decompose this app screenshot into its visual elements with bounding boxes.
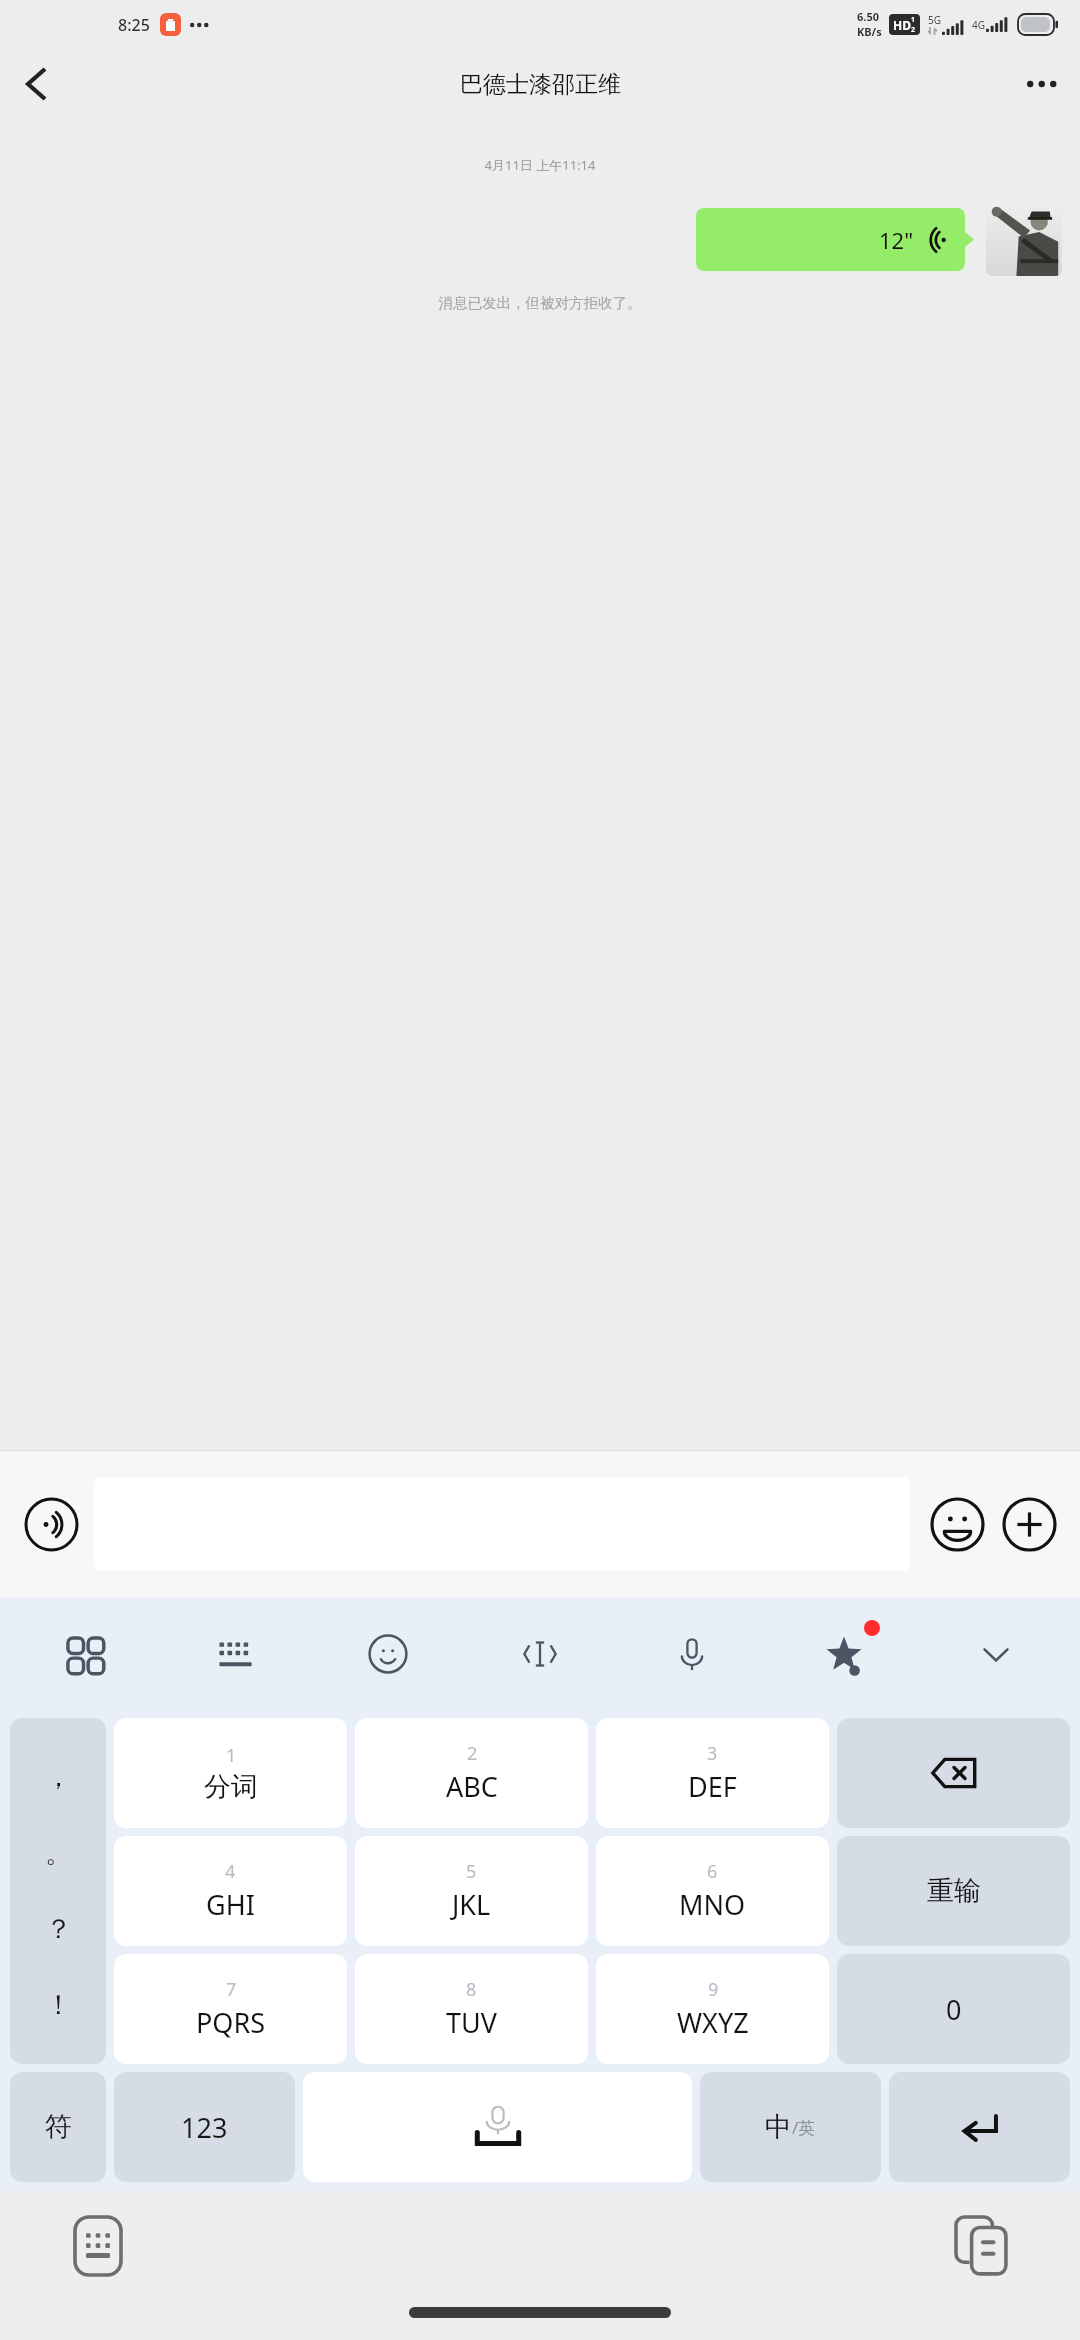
- staticText: MNO: [679, 1886, 746, 1923]
- button[interactable]: 7: [114, 1954, 347, 2064]
- staticText: ABC: [446, 1768, 498, 1805]
- button[interactable]: ，: [10, 1718, 106, 2064]
- button[interactable]: More functions: [998, 1493, 1060, 1555]
- staticText: 4月11日 上午11:14: [0, 156, 1080, 174]
- button[interactable]: Voice input: [660, 1622, 724, 1686]
- staticText: 3: [707, 1741, 718, 1766]
- staticText: 0: [946, 1991, 962, 2028]
- button[interactable]: Hide keyboard: [964, 1622, 1028, 1686]
- staticText: 2: [911, 25, 916, 35]
- staticText: 123: [181, 2109, 228, 2146]
- button[interactable]: 重输: [837, 1836, 1070, 1946]
- staticText: 7: [226, 1977, 237, 2002]
- button[interactable]: 6: [596, 1836, 829, 1946]
- button[interactable]: 1: [114, 1718, 347, 1828]
- button[interactable]: Emoji: [356, 1622, 420, 1686]
- staticText: 2: [467, 1741, 478, 1766]
- staticText: 符: [45, 2110, 72, 2144]
- button[interactable]: Keyboard layout: [204, 1622, 268, 1686]
- staticText: 消息已发出，但被对方拒收了。: [0, 294, 1080, 312]
- staticText: 12": [879, 225, 914, 255]
- staticText: JKL: [452, 1886, 491, 1923]
- staticText: 。: [45, 1836, 72, 1870]
- button[interactable]: 3: [596, 1718, 829, 1828]
- button[interactable]: 123: [114, 2072, 295, 2182]
- staticText: 巴德士漆邵正维: [460, 70, 621, 99]
- staticText: ，: [45, 1760, 72, 1794]
- button[interactable]: 2: [355, 1718, 588, 1828]
- staticText: ？: [45, 1912, 72, 1946]
- staticText: KB/s: [857, 24, 882, 39]
- button[interactable]: Space: [303, 2072, 692, 2182]
- staticText: 8:25: [118, 14, 150, 36]
- button[interactable]: [986, 200, 1062, 276]
- button[interactable]: 9: [596, 1954, 829, 2064]
- staticText: HD: [893, 17, 911, 33]
- staticText: 1: [226, 1743, 237, 1768]
- staticText: PQRS: [196, 2004, 266, 2041]
- staticText: 8: [466, 1977, 477, 2002]
- button[interactable]: Enter: [889, 2072, 1070, 2182]
- staticText: TUV: [446, 2004, 497, 2041]
- staticText: 中: [765, 2110, 792, 2144]
- staticText: 9: [708, 1977, 719, 2002]
- button[interactable]: Apps: [52, 1622, 116, 1686]
- button[interactable]: Recent apps: [946, 2210, 1018, 2282]
- button[interactable]: Back: [0, 48, 72, 120]
- button[interactable]: Switch keyboard: [62, 2210, 134, 2282]
- button[interactable]: 12": [696, 208, 974, 271]
- staticText: 4G: [972, 18, 985, 32]
- staticText: WXYZ: [677, 2004, 749, 2041]
- button[interactable]: 8: [355, 1954, 588, 2064]
- button[interactable]: 0: [837, 1954, 1070, 2064]
- button[interactable]: 中: [700, 2072, 881, 2182]
- button[interactable]: Cursor move: [508, 1622, 572, 1686]
- staticText: 6.50: [857, 9, 879, 24]
- staticText: 1: [911, 15, 916, 25]
- button[interactable]: Magic AI: [812, 1622, 876, 1686]
- staticText: 4: [225, 1859, 236, 1884]
- button[interactable]: Backspace: [837, 1718, 1070, 1828]
- staticText: 6: [707, 1859, 718, 1884]
- staticText: /英: [792, 2116, 816, 2139]
- staticText: DEF: [688, 1768, 737, 1805]
- button[interactable]: 4: [114, 1836, 347, 1946]
- button[interactable]: More options: [1008, 48, 1080, 120]
- button[interactable]: 5: [355, 1836, 588, 1946]
- staticText: 5: [466, 1859, 477, 1884]
- staticText: GHI: [206, 1886, 255, 1923]
- button[interactable]: 符: [10, 2072, 106, 2182]
- button[interactable]: Emoji: [926, 1493, 988, 1555]
- staticText: 分词: [204, 1770, 258, 1804]
- staticText: 5G: [928, 13, 941, 27]
- staticText: ！: [45, 1988, 72, 2022]
- staticText: 重输: [927, 1874, 981, 1908]
- button[interactable]: Voice input: [20, 1493, 82, 1555]
